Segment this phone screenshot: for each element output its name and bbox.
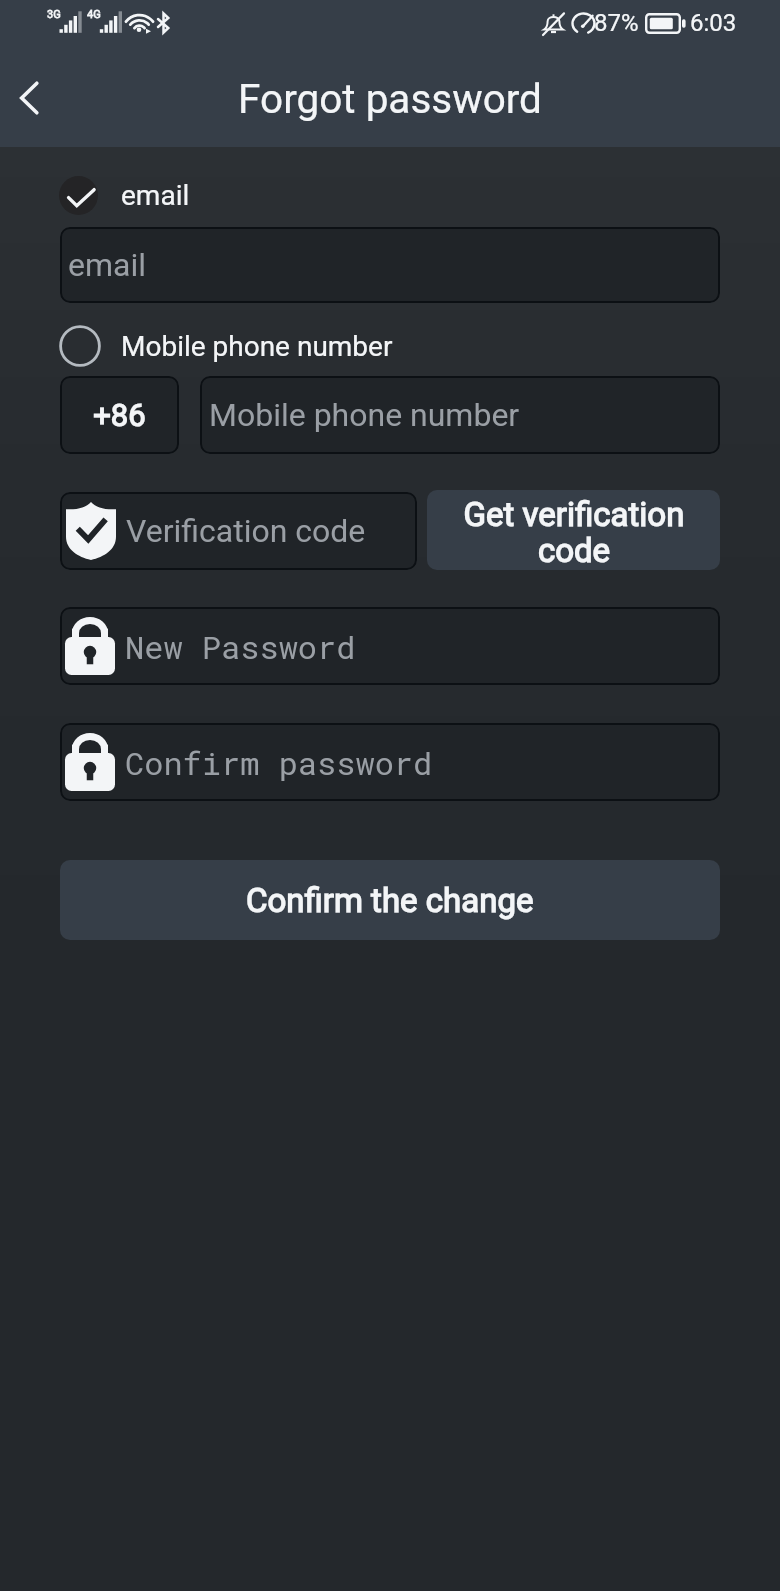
- staticText: +86: [60, 397, 179, 433]
- button[interactable]: Confirm password: [60, 723, 720, 801]
- staticText: Forgot password: [0, 75, 780, 122]
- staticText: Confirm password: [125, 741, 433, 783]
- button[interactable]: New Password: [60, 607, 720, 685]
- staticText: Mobile phone number: [121, 330, 393, 363]
- staticText: Verification code: [126, 512, 366, 550]
- button[interactable]: Mobile phone number: [59, 325, 393, 367]
- staticText: 6:03: [690, 9, 737, 37]
- button[interactable]: Mobile phone number: [200, 376, 720, 454]
- button[interactable]: email: [60, 227, 720, 303]
- staticText: 4G: [87, 8, 101, 21]
- button[interactable]: Back: [0, 66, 64, 130]
- staticText: Get verification code: [460, 495, 688, 570]
- staticText: 87%: [594, 9, 639, 37]
- staticText: email: [121, 179, 190, 212]
- staticText: New Password: [125, 625, 356, 667]
- button[interactable]: Confirm the change: [60, 860, 720, 940]
- staticText: Mobile phone number: [209, 396, 520, 434]
- staticText: Confirm the change: [246, 881, 534, 920]
- button[interactable]: +86: [60, 376, 179, 454]
- staticText: email: [68, 246, 146, 284]
- button[interactable]: Verification code: [60, 492, 417, 570]
- button[interactable]: email: [59, 176, 190, 215]
- button[interactable]: Get verification code: [427, 490, 720, 570]
- staticText: 3G: [47, 8, 61, 21]
